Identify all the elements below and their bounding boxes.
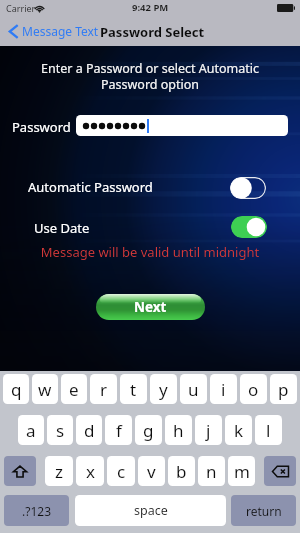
button[interactable]: b — [168, 456, 195, 486]
button[interactable]: Toggle off — [230, 177, 266, 199]
staticText: r — [100, 378, 108, 401]
staticText: Enter a Password or select Automatic Pas… — [12, 60, 288, 93]
button[interactable]: Next — [96, 294, 205, 320]
button[interactable]: n — [198, 456, 225, 486]
button[interactable]: m — [228, 456, 255, 486]
staticText: Next — [134, 298, 167, 316]
button[interactable]: space — [75, 495, 226, 526]
staticText: b — [176, 460, 187, 483]
staticText: x — [86, 460, 95, 483]
staticText: Automatic Password — [28, 178, 153, 196]
button[interactable] — [76, 115, 288, 136]
button[interactable]: Backspace — [264, 456, 296, 486]
staticText: a — [26, 419, 36, 442]
button[interactable]: q — [3, 374, 29, 404]
button[interactable]: x — [76, 456, 104, 486]
button[interactable]: c — [107, 456, 135, 486]
staticText: l — [266, 419, 271, 442]
staticText: Password — [12, 118, 71, 136]
staticText: e — [69, 378, 79, 401]
staticText: n — [206, 460, 217, 483]
button[interactable]: o — [240, 374, 267, 404]
staticText: v — [147, 460, 156, 483]
button[interactable]: f — [105, 415, 132, 445]
staticText: return — [246, 503, 282, 519]
button[interactable]: Shift — [4, 456, 36, 486]
staticText: 9:42 PM — [132, 1, 169, 14]
staticText: p — [278, 378, 289, 401]
button[interactable]: .?123 — [4, 495, 69, 526]
button[interactable]: y — [150, 374, 177, 404]
staticText: Carrier — [6, 2, 36, 14]
button[interactable]: s — [47, 415, 73, 445]
staticText: space — [134, 502, 168, 519]
button[interactable]: h — [165, 415, 192, 445]
staticText: y — [159, 378, 168, 401]
button[interactable]: p — [270, 374, 297, 404]
button[interactable]: Message Text — [8, 18, 99, 44]
staticText: c — [117, 460, 126, 483]
button[interactable]: a — [18, 415, 44, 445]
button[interactable]: t — [120, 374, 147, 404]
staticText: Message will be valid until midnight — [0, 243, 300, 261]
staticText: f — [116, 419, 122, 442]
button[interactable]: u — [180, 374, 207, 404]
button[interactable]: w — [32, 374, 58, 404]
staticText: z — [55, 460, 63, 483]
button[interactable]: e — [61, 374, 87, 404]
staticText: j — [206, 419, 211, 442]
button[interactable]: return — [231, 495, 296, 526]
button[interactable]: j — [195, 415, 222, 445]
button[interactable]: z — [45, 456, 73, 486]
staticText: .?123 — [22, 503, 52, 519]
button[interactable]: i — [210, 374, 237, 404]
staticText: m — [234, 460, 250, 483]
staticText: g — [143, 419, 154, 442]
staticText: Message Text — [22, 23, 99, 39]
button[interactable]: v — [138, 456, 165, 486]
staticText: w — [38, 378, 52, 401]
staticText: u — [188, 378, 199, 401]
staticText: h — [173, 419, 184, 442]
button[interactable]: k — [225, 415, 252, 445]
button[interactable]: r — [90, 374, 117, 404]
staticText: d — [84, 419, 95, 442]
staticText: s — [56, 419, 65, 442]
staticText: Use Date — [34, 219, 90, 237]
staticText: Password Select — [100, 23, 205, 41]
staticText: q — [11, 378, 22, 401]
staticText: k — [234, 419, 244, 442]
button[interactable]: g — [135, 415, 162, 445]
staticText: t — [130, 378, 137, 401]
button[interactable]: Toggle on — [231, 216, 267, 238]
staticText: i — [221, 378, 226, 401]
button[interactable]: l — [255, 415, 282, 445]
staticText: o — [248, 378, 259, 401]
button[interactable]: d — [76, 415, 102, 445]
